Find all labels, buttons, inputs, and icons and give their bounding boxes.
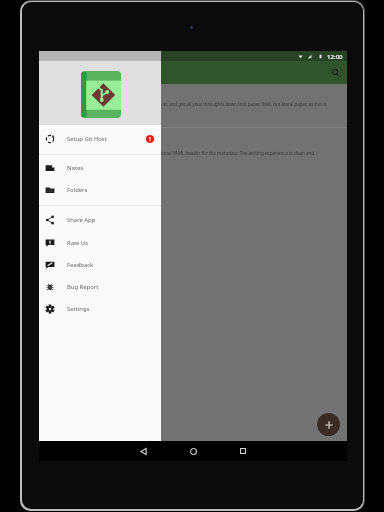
button[interactable]: Settings: [39, 298, 161, 320]
button[interactable]: Feedback: [39, 254, 161, 276]
staticText: Rate Us: [67, 239, 89, 247]
button[interactable]: Folders: [39, 179, 161, 201]
button[interactable]: Share App: [39, 209, 161, 231]
button[interactable]: Back: [118, 441, 168, 461]
button[interactable]: Home: [168, 441, 218, 461]
staticText: All notes are stored as plain markdown f…: [43, 150, 315, 156]
button[interactable]: Rate Us: [39, 232, 161, 254]
staticText: Setup Git Host: [67, 135, 107, 143]
button[interactable]: Setup Git Host: [39, 128, 161, 150]
button[interactable]: Bug Report: [39, 276, 161, 298]
button[interactable]: Notes: [39, 157, 161, 179]
staticText: Notes: [67, 164, 84, 172]
staticText: feel like you need to write things down?…: [43, 101, 327, 107]
staticText: Settings: [67, 305, 90, 313]
staticText: Bug Report: [67, 283, 99, 291]
button[interactable]: Search: [326, 63, 346, 83]
staticText: 12:00: [327, 52, 343, 60]
staticText: Share App: [67, 216, 96, 224]
button[interactable]: New note: [317, 413, 340, 436]
button[interactable]: Recent apps: [218, 441, 268, 461]
staticText: Folders: [67, 186, 88, 194]
staticText: Feedback: [67, 261, 94, 269]
